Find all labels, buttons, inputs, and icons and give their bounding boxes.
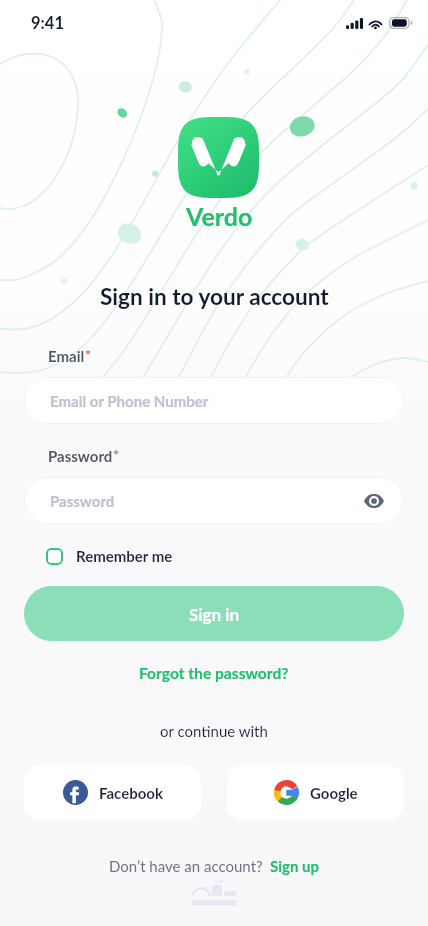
button[interactable]: Email or Phone Number [24,377,404,424]
staticText: Sign up [270,857,320,875]
button[interactable]: Forgot the password? [133,661,295,686]
staticText: Remember me [76,547,173,565]
staticText: Password [48,447,113,465]
staticText: Password [50,492,115,510]
staticText: Email [48,347,85,365]
staticText: Facebook [99,784,163,802]
staticText: Sign in to your account [100,283,329,310]
staticText: Don’t have an account? [109,857,263,875]
button[interactable]: Show password [357,484,391,518]
button[interactable]: Sign in [24,586,404,641]
button[interactable]: Remember me [46,545,173,567]
staticText: * [113,446,119,463]
staticText: Google [310,784,358,802]
button[interactable]: Sign up [270,857,320,875]
staticText: Forgot the password? [139,664,289,683]
staticText: 9:41 [31,13,64,33]
staticText: or continue with [160,722,268,740]
button[interactable]: Facebook [24,765,201,820]
button[interactable]: Password [24,477,404,524]
staticText: * [85,346,91,363]
button[interactable]: Google [227,765,404,820]
staticText: Verdo [186,201,253,231]
staticText: Sign in [189,604,240,624]
staticText: Email or Phone Number [50,392,209,410]
